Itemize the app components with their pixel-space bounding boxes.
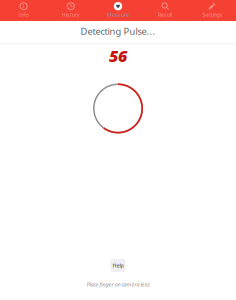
button[interactable]: History xyxy=(47,0,94,22)
staticText: Detecting Pulse... xyxy=(80,25,155,37)
staticText: Info xyxy=(19,11,29,18)
button[interactable]: Measure xyxy=(94,0,142,22)
staticText: 56 xyxy=(109,45,127,66)
staticText: Result xyxy=(158,11,173,18)
staticText: History xyxy=(62,11,80,18)
staticText: Place finger on camera lens xyxy=(86,281,149,288)
button[interactable]: Info xyxy=(0,0,47,22)
staticText: Help xyxy=(112,262,123,269)
button[interactable]: Help xyxy=(110,259,125,272)
staticText: Settings xyxy=(202,11,222,18)
staticText: Measure xyxy=(107,11,129,18)
button[interactable]: Result xyxy=(142,0,189,22)
button[interactable]: Settings xyxy=(189,0,236,22)
